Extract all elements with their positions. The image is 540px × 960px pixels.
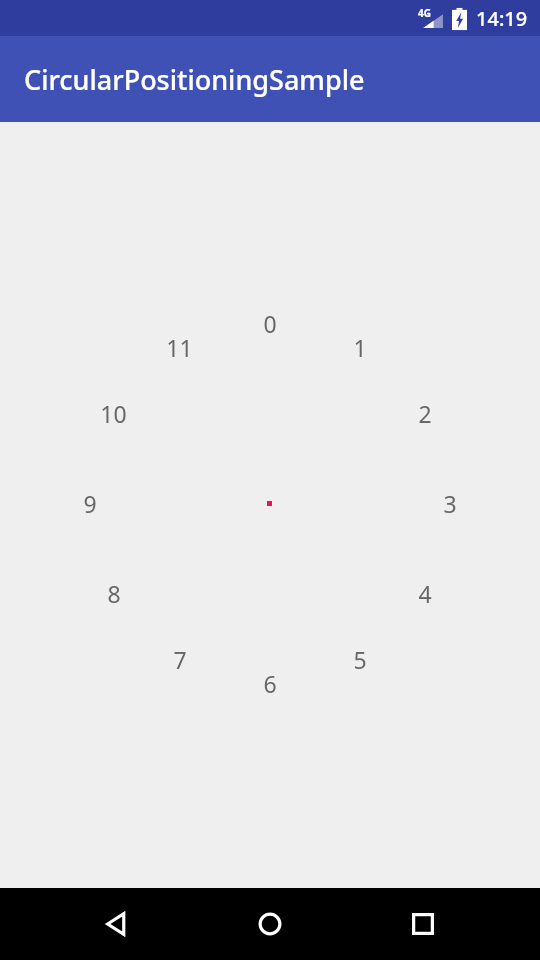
button[interactable]: Home <box>234 888 306 960</box>
staticText: CircularPositioningSample <box>24 61 365 98</box>
staticText: 10 <box>100 398 127 429</box>
staticText: 11 <box>166 332 193 363</box>
staticText: 6 <box>263 668 277 699</box>
staticText: 9 <box>83 488 97 519</box>
staticText: 1 <box>353 332 367 363</box>
button[interactable]: Recent apps <box>387 888 459 960</box>
staticText: 8 <box>107 578 121 609</box>
button[interactable]: Back <box>81 888 153 960</box>
staticText: 2 <box>418 398 432 429</box>
staticText: 0 <box>263 308 277 339</box>
staticText: 4G <box>418 6 431 20</box>
staticText: 5 <box>353 644 367 675</box>
staticText: 14:19 <box>476 5 528 32</box>
staticText: 3 <box>443 488 457 519</box>
staticText: 4 <box>418 578 432 609</box>
staticText: 7 <box>173 644 187 675</box>
